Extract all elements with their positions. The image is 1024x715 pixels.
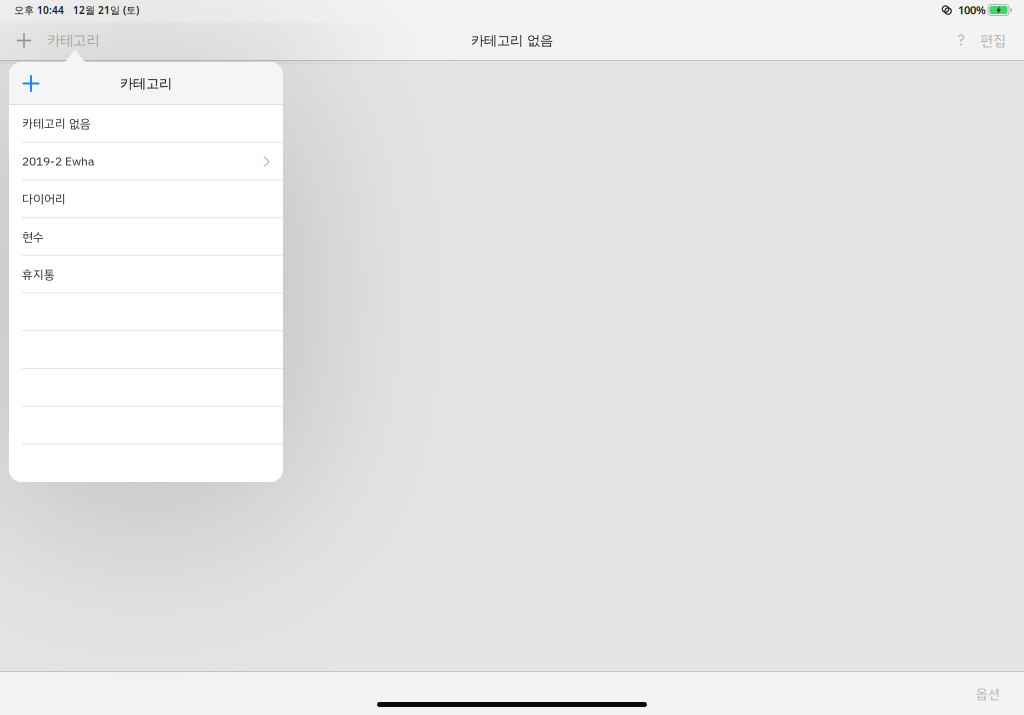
staticText: 2019-2 Ewha (22, 153, 94, 171)
staticText: ? (957, 29, 964, 51)
button[interactable]: 카테고리 추가 (16, 68, 46, 98)
staticText: 옵션 (976, 684, 1000, 704)
staticText: 100% (958, 2, 986, 18)
button[interactable] (9, 293, 283, 331)
button[interactable]: 도움말 (950, 23, 972, 57)
button[interactable]: 현수 (9, 218, 283, 256)
button[interactable]: 2019-2 Ewha (9, 143, 283, 180)
button[interactable] (9, 331, 283, 369)
button[interactable]: 카테고리 (39, 23, 107, 57)
staticText: 카테고리 (120, 75, 172, 92)
staticText: 편집 (980, 29, 1006, 51)
button[interactable]: 카테고리 없음 (9, 105, 283, 143)
button[interactable]: 옵션 (966, 679, 1010, 709)
staticText: 카테고리 (47, 29, 99, 51)
button[interactable]: 새로 만들기 (9, 23, 39, 57)
button[interactable]: 편집 (972, 23, 1014, 57)
staticText: 현수 (22, 228, 44, 246)
staticText: 다이어리 (22, 190, 66, 208)
staticText: 휴지통 (22, 266, 55, 284)
button[interactable]: 다이어리 (9, 180, 283, 218)
button[interactable] (9, 444, 283, 482)
staticText: 오후 10:44 12월 21일 (토) (14, 3, 139, 17)
staticText: 카테고리 없음 (471, 32, 553, 49)
button[interactable]: 휴지통 (9, 256, 283, 293)
staticText: 카테고리 없음 (22, 115, 91, 133)
